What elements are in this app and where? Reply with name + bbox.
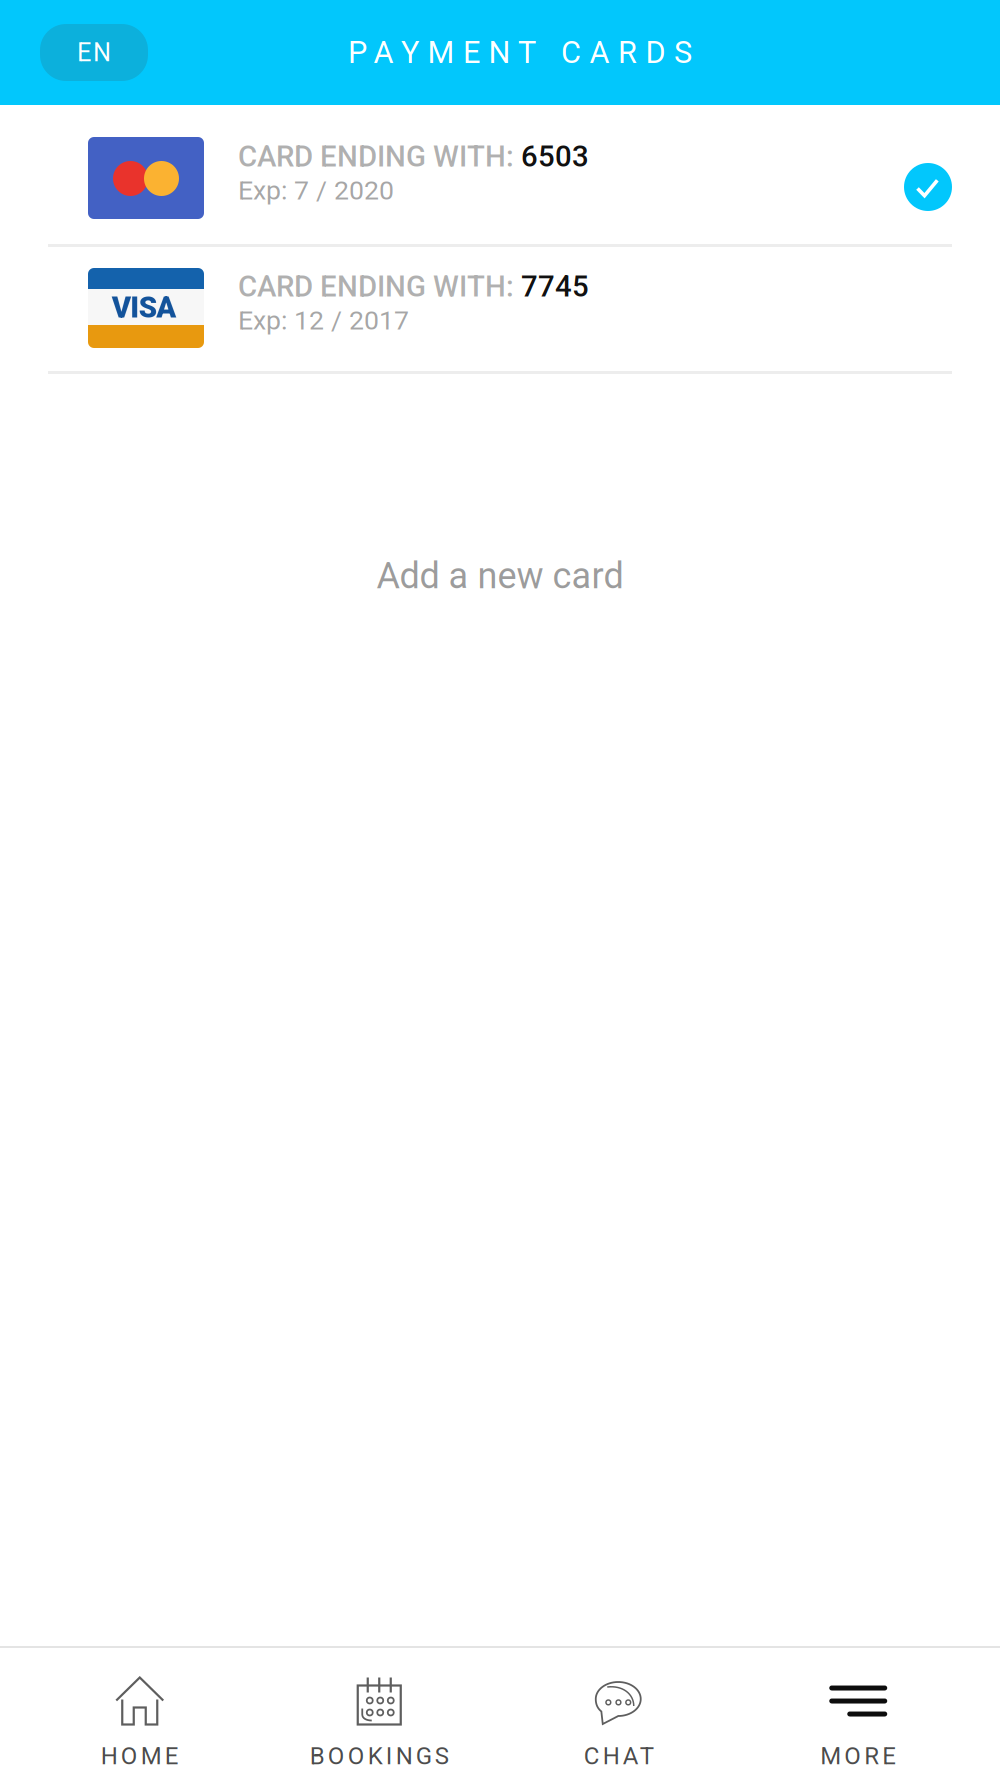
staticText: VISA (112, 290, 176, 325)
staticText: MORE (820, 1742, 896, 1770)
button[interactable]: CARD ENDING WITH: (0, 105, 1000, 244)
button[interactable]: CHAT (499, 1648, 738, 1778)
staticText: BOOKINGS (310, 1742, 449, 1770)
staticText: CARD ENDING WITH: (238, 269, 514, 304)
staticText: 7745 (514, 269, 589, 304)
button[interactable]: HOME (20, 1648, 259, 1778)
button[interactable]: Change language, currently EN (40, 24, 148, 81)
staticText: CHAT (584, 1742, 654, 1770)
button[interactable]: BOOKINGS (259, 1648, 499, 1778)
button[interactable]: VISA (0, 247, 1000, 371)
staticText: 6503 (514, 139, 589, 174)
staticText: Exp: 7 / 2020 (238, 175, 394, 206)
button[interactable]: MORE (738, 1648, 978, 1778)
staticText: Add a new card (376, 555, 623, 597)
staticText: PAYMENT CARDS (348, 34, 692, 70)
staticText: CARD ENDING WITH: (238, 139, 514, 174)
staticText: EN (77, 38, 111, 67)
staticText: Exp: 12 / 2017 (238, 305, 409, 336)
staticText: HOME (101, 1742, 179, 1770)
button[interactable]: Add a new card (0, 374, 1000, 778)
